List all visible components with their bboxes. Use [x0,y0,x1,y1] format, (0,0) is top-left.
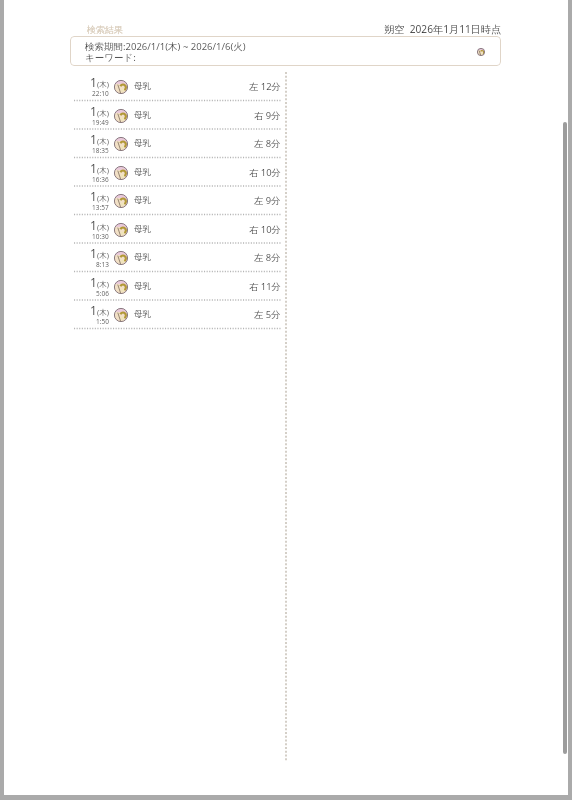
staticText: 母乳 [134,281,151,292]
staticText: 右 10分 [249,223,281,236]
staticText: (木) [97,136,109,146]
staticText: 母乳 [134,224,151,235]
button[interactable]: 検索期間:2026/1/1(木) ~ 2026/1/6(火) キーワード: [70,36,501,66]
staticText: 10:30 [92,232,109,241]
staticText: 18:35 [92,146,109,155]
staticText: 1 [90,103,97,119]
button[interactable]: 1 [72,72,281,101]
staticText: 8:13 [96,260,109,269]
staticText: 1 [90,302,97,318]
staticText: 母乳 [134,138,151,149]
staticText: 右 9分 [254,109,281,122]
staticText: 1 [90,74,97,90]
button[interactable]: 1 [72,243,281,272]
staticText: (木) [97,222,109,232]
staticText: 検索結果 [87,24,123,35]
staticText: 左 8分 [254,137,281,150]
button[interactable]: 1 [72,300,281,329]
button[interactable]: 1 [72,272,281,301]
staticText: 22:10 [92,89,109,98]
staticText: 母乳 [134,110,151,121]
staticText: 1 [90,274,97,290]
staticText: 右 10分 [249,166,281,179]
button[interactable]: 母乳 (Breastfeeding) filter [477,48,485,56]
staticText: (木) [97,108,109,118]
button[interactable]: 1 [72,186,281,215]
staticText: 右 11分 [249,280,281,293]
staticText: (木) [97,279,109,289]
staticText: 母乳 [134,309,151,320]
staticText: 1 [90,217,97,233]
staticText: 19:49 [92,118,109,127]
staticText: 朔空 2026年1月11日時点 [384,22,502,36]
staticText: 母乳 [134,195,151,206]
staticText: 13:57 [92,203,109,212]
staticText: 母乳 [134,81,151,92]
staticText: 左 8分 [254,251,281,264]
button[interactable]: 1 [72,129,281,158]
staticText: 1 [90,188,97,204]
staticText: 1:50 [96,317,109,326]
staticText: (木) [97,79,109,89]
staticText: 1 [90,245,97,261]
staticText: 左 5分 [254,308,281,321]
staticText: (木) [97,165,109,175]
staticText: (木) [97,307,109,317]
staticText: 左 9分 [254,194,281,207]
staticText: 16:36 [92,175,109,184]
staticText: (木) [97,193,109,203]
staticText: 5:06 [96,289,109,298]
staticText: 左 12分 [249,80,281,93]
staticText: 母乳 [134,252,151,263]
button[interactable]: 1 [72,101,281,130]
button[interactable]: 1 [72,215,281,244]
staticText: (木) [97,250,109,260]
staticText: 母乳 [134,167,151,178]
staticText: 1 [90,160,97,176]
button[interactable]: 1 [72,158,281,187]
staticText: 検索期間:2026/1/1(木) ~ 2026/1/6(火) キーワード: [85,40,246,64]
staticText: 1 [90,131,97,147]
